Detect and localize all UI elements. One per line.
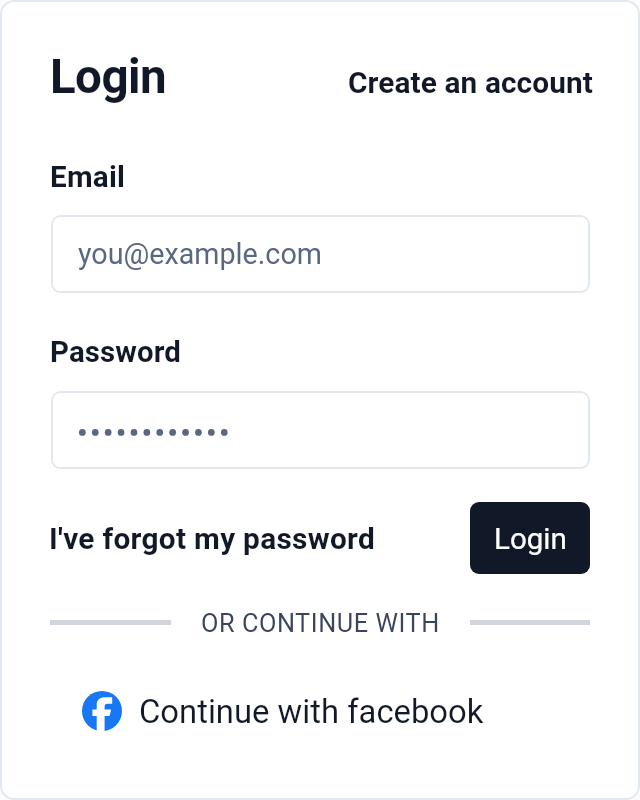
staticText: Continue with facebook bbox=[139, 693, 484, 731]
staticText: Login bbox=[494, 522, 567, 557]
button[interactable]: Create an account bbox=[340, 55, 601, 110]
staticText: Password bbox=[50, 335, 181, 369]
staticText: I've forgot my password bbox=[49, 521, 376, 556]
button[interactable] bbox=[51, 391, 590, 469]
staticText: you@example.com bbox=[78, 237, 322, 271]
other: Facebook bbox=[82, 691, 122, 731]
staticText: OR CONTINUE WITH bbox=[201, 609, 440, 639]
button[interactable]: I've forgot my password bbox=[41, 511, 384, 566]
button[interactable]: you@example.com bbox=[51, 215, 590, 293]
staticText: Login bbox=[50, 49, 166, 105]
staticText: Email bbox=[50, 160, 126, 195]
staticText: Create an account bbox=[348, 65, 593, 100]
button[interactable]: Login bbox=[470, 502, 590, 574]
button[interactable]: Facebook bbox=[70, 677, 496, 745]
